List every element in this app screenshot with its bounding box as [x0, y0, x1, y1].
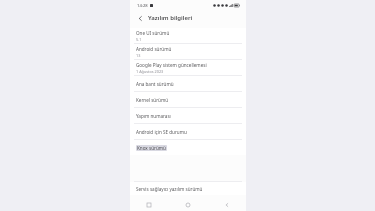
staticText: Servis sağlayıcı yazılım sürümü	[136, 186, 203, 192]
staticText: Android sürümü	[136, 46, 172, 52]
staticText: Ana bant sürümü	[136, 81, 174, 87]
staticText: 14:28	[137, 3, 148, 9]
staticText: Android için SE durumu	[136, 129, 187, 135]
button[interactable]: Android sürümü	[130, 44, 246, 59]
button[interactable]: Knox sürümü	[130, 140, 246, 155]
button[interactable]: One UI sürümü	[130, 28, 246, 43]
button[interactable]: Back	[207, 199, 246, 211]
button[interactable]: Yapım numarası	[130, 108, 246, 123]
staticText: 1 Ağustos 2023	[136, 69, 164, 74]
staticText: One UI sürümü	[136, 30, 170, 36]
button[interactable]: Android için SE durumu	[130, 124, 246, 139]
button[interactable]: Recents	[130, 199, 168, 211]
staticText: Yapım numarası	[136, 113, 171, 119]
staticText: 5.1	[136, 37, 142, 42]
button[interactable]: Google Play sistem güncellemesi	[130, 60, 246, 75]
button[interactable]: Servis sağlayıcı yazılım sürümü	[130, 182, 246, 195]
staticText: Kernel sürümü	[136, 97, 169, 103]
button[interactable]: Back	[135, 13, 145, 23]
staticText: Yazılım bilgileri	[148, 14, 193, 22]
staticText: Google Play sistem güncellemesi	[136, 62, 207, 68]
button[interactable]: Kernel sürümü	[130, 92, 246, 107]
staticText: Knox sürümü	[137, 145, 166, 151]
staticText: 13	[136, 53, 141, 58]
button[interactable]: Home	[168, 199, 207, 211]
button[interactable]: Ana bant sürümü	[130, 76, 246, 91]
